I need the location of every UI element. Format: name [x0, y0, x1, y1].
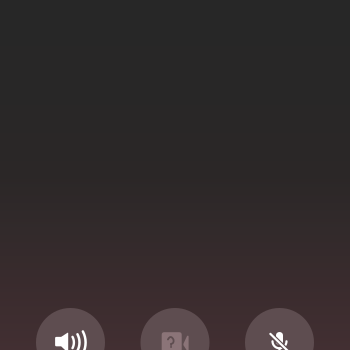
button[interactable]: Unmute — [245, 308, 314, 350]
button[interactable]: Turn Camera On — [140, 308, 209, 350]
button[interactable]: Speaker — [36, 308, 105, 350]
